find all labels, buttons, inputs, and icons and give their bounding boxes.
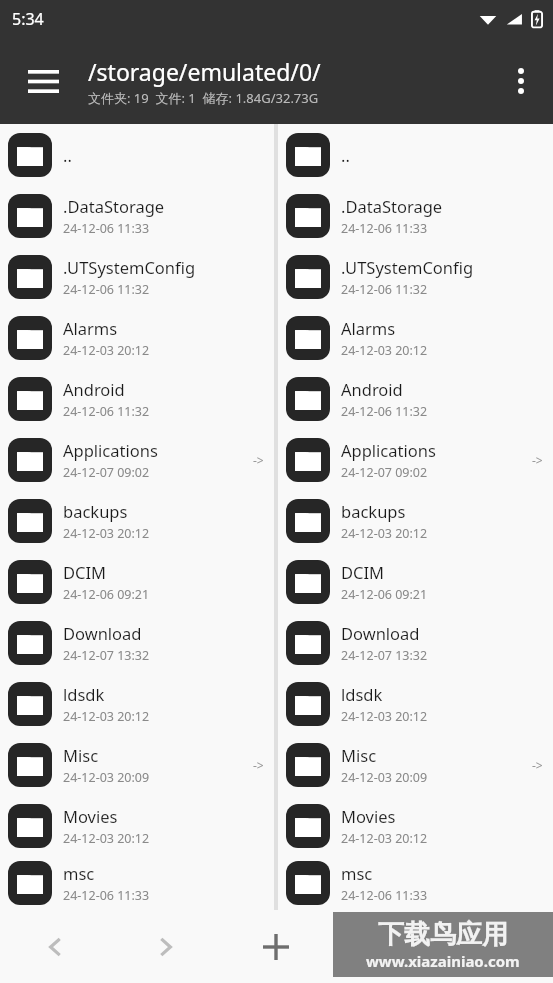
staticText: ->	[532, 757, 543, 773]
button[interactable]: Alarms	[278, 307, 553, 368]
button[interactable]: Misc	[278, 734, 553, 795]
button[interactable]: ldsdk	[0, 673, 274, 734]
button[interactable]: backups	[278, 490, 553, 551]
staticText: 24-12-03 20:12	[63, 525, 150, 542]
staticText: Download	[341, 622, 420, 644]
staticText: www.xiazainiao.com	[366, 951, 520, 971]
button[interactable]: Back	[27, 919, 83, 975]
staticText: 24-12-03 20:12	[341, 708, 428, 725]
button[interactable]: msc	[278, 856, 553, 910]
staticText: 24-12-06 09:21	[341, 586, 428, 603]
staticText: 24-12-03 20:12	[63, 830, 150, 847]
staticText: ..	[341, 144, 350, 166]
staticText: 文件夹: 19 文件: 1 储存: 1.84G/32.73G	[88, 89, 319, 107]
button[interactable]: Forward	[138, 919, 194, 975]
staticText: ldsdk	[63, 683, 105, 705]
staticText: Android	[63, 378, 125, 400]
staticText: 24-12-03 20:09	[341, 769, 428, 786]
staticText: 24-12-03 20:09	[63, 769, 150, 786]
button[interactable]: Applications	[0, 429, 274, 490]
button[interactable]: .DataStorage	[0, 185, 274, 246]
staticText: .DataStorage	[341, 195, 443, 217]
button[interactable]: Movies	[278, 795, 553, 856]
button[interactable]: backups	[0, 490, 274, 551]
staticText: 24-12-03 20:12	[341, 342, 428, 359]
staticText: Alarms	[63, 317, 118, 339]
staticText: Android	[341, 378, 403, 400]
staticText: .UTSystemConfig	[63, 256, 196, 278]
staticText: 24-12-07 09:02	[341, 464, 428, 481]
staticText: .DataStorage	[63, 195, 165, 217]
button[interactable]: Movies	[0, 795, 274, 856]
staticText: 24-12-06 11:33	[341, 220, 428, 237]
staticText: 24-12-06 11:32	[63, 403, 150, 420]
staticText: Applications	[341, 439, 436, 461]
staticText: 24-12-06 09:21	[63, 586, 150, 603]
button[interactable]: Add	[248, 919, 304, 975]
staticText: 24-12-03 20:12	[341, 830, 428, 847]
button[interactable]: Android	[278, 368, 553, 429]
staticText: 24-12-07 13:32	[63, 647, 150, 664]
staticText: 24-12-07 09:02	[63, 464, 150, 481]
staticText: 24-12-03 20:12	[63, 342, 150, 359]
staticText: Alarms	[341, 317, 396, 339]
button[interactable]: Misc	[0, 734, 274, 795]
button[interactable]: More options	[497, 57, 545, 105]
staticText: DCIM	[63, 561, 107, 583]
staticText: Movies	[63, 805, 118, 827]
staticText: 24-12-06 11:33	[63, 220, 150, 237]
button[interactable]: ..	[278, 124, 553, 185]
staticText: 24-12-03 20:12	[63, 708, 150, 725]
staticText: ..	[63, 144, 72, 166]
staticText: Misc	[341, 744, 377, 766]
staticText: 下载鸟应用	[378, 918, 508, 951]
button[interactable]: Open navigation drawer	[16, 54, 70, 108]
staticText: msc	[63, 862, 95, 884]
staticText: 24-12-06 11:32	[341, 281, 428, 298]
staticText: 24-12-06 11:32	[341, 403, 428, 420]
staticText: /storage/emulated/0/	[88, 56, 321, 87]
button[interactable]: .UTSystemConfig	[0, 246, 274, 307]
button[interactable]: ldsdk	[278, 673, 553, 734]
button[interactable]: DCIM	[278, 551, 553, 612]
button[interactable]: msc	[0, 856, 274, 910]
button[interactable]: Applications	[278, 429, 553, 490]
button[interactable]: Download	[278, 612, 553, 673]
button[interactable]: .UTSystemConfig	[278, 246, 553, 307]
staticText: 24-12-06 11:33	[341, 887, 428, 904]
staticText: Movies	[341, 805, 396, 827]
staticText: 24-12-07 13:32	[341, 647, 428, 664]
staticText: ldsdk	[341, 683, 383, 705]
button[interactable]: .DataStorage	[278, 185, 553, 246]
staticText: backups	[341, 500, 406, 522]
button[interactable]: DCIM	[0, 551, 274, 612]
staticText: 24-12-06 11:33	[63, 887, 150, 904]
staticText: ->	[253, 452, 264, 468]
staticText: Applications	[63, 439, 158, 461]
button[interactable]: ..	[0, 124, 274, 185]
staticText: 5:34	[12, 8, 44, 30]
staticText: DCIM	[341, 561, 385, 583]
staticText: backups	[63, 500, 128, 522]
staticText: msc	[341, 862, 373, 884]
staticText: ->	[532, 452, 543, 468]
staticText: 24-12-06 11:32	[63, 281, 150, 298]
staticText: Download	[63, 622, 142, 644]
button[interactable]: Download	[0, 612, 274, 673]
staticText: .UTSystemConfig	[341, 256, 474, 278]
staticText: Misc	[63, 744, 99, 766]
button[interactable]: Android	[0, 368, 274, 429]
staticText: ->	[253, 757, 264, 773]
button[interactable]: Alarms	[0, 307, 274, 368]
staticText: 24-12-03 20:12	[341, 525, 428, 542]
